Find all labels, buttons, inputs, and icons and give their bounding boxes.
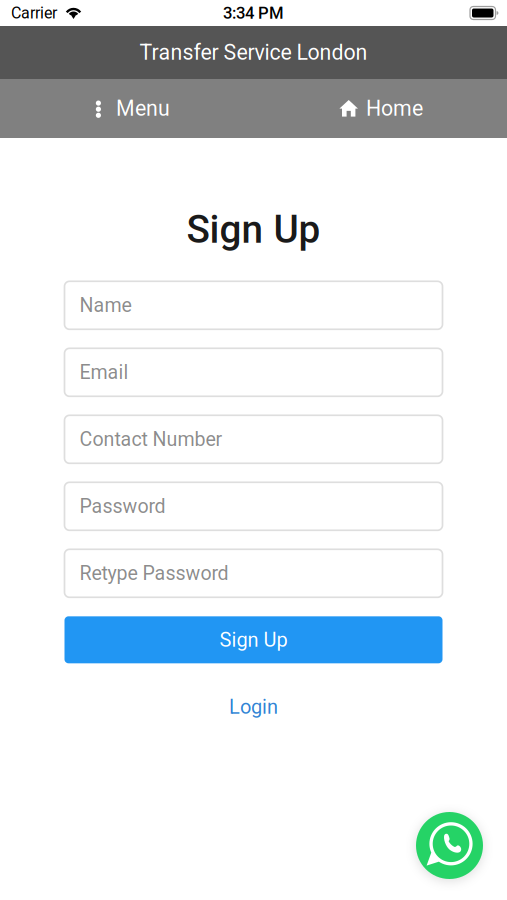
button[interactable]: Menu: [0, 79, 253, 138]
staticText: Email: [79, 361, 128, 384]
button[interactable]: Contact Number: [64, 415, 442, 463]
staticText: Home: [366, 96, 423, 121]
button[interactable]: Home: [253, 79, 507, 138]
button[interactable]: Login: [215, 690, 292, 724]
button[interactable]: Name: [64, 281, 442, 329]
staticText: Transfer Service London: [139, 40, 367, 65]
staticText: Name: [79, 294, 131, 317]
staticText: Menu: [116, 96, 170, 121]
button[interactable]: Retype Password: [64, 549, 442, 597]
staticText: Login: [229, 695, 278, 719]
button[interactable]: Password: [64, 482, 442, 530]
button[interactable]: Email: [64, 348, 442, 396]
button[interactable]: Sign Up: [64, 616, 442, 663]
staticText: Contact Number: [79, 428, 222, 451]
staticText: Sign Up: [186, 207, 320, 252]
staticText: Retype Password: [79, 562, 228, 585]
staticText: Sign Up: [219, 628, 287, 651]
staticText: 3:34 PM: [223, 3, 284, 23]
button[interactable]: Chat on WhatsApp: [416, 812, 483, 879]
staticText: Carrier: [11, 4, 57, 22]
staticText: Password: [79, 495, 165, 518]
